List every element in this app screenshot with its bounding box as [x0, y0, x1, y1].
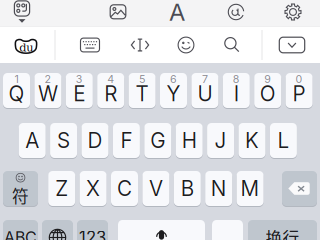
- button[interactable]: Baidu input: [8, 31, 44, 59]
- button[interactable]: 9: [254, 73, 281, 108]
- staticText: S: [57, 128, 70, 153]
- staticText: 8: [233, 72, 240, 85]
- staticText: A: [169, 0, 185, 26]
- staticText: 2: [44, 72, 51, 85]
- button[interactable]: Switch language: [42, 220, 73, 240]
- button[interactable]: C: [111, 171, 138, 206]
- staticText: W: [38, 81, 58, 106]
- staticText: U: [197, 81, 212, 106]
- button[interactable]: 0: [286, 73, 313, 108]
- staticText: 5: [139, 72, 145, 85]
- staticText: H: [182, 128, 197, 153]
- staticText: F: [120, 128, 132, 153]
- button[interactable]: Keyboard layout: [72, 31, 108, 59]
- button[interactable]: D: [81, 123, 108, 158]
- staticText: B: [181, 176, 194, 201]
- button[interactable]: 6: [160, 73, 187, 108]
- button[interactable]: L: [270, 123, 297, 158]
- staticText: Q: [8, 81, 24, 106]
- button[interactable]: 5: [129, 73, 156, 108]
- staticText: C: [117, 176, 132, 201]
- button[interactable]: 1: [3, 73, 30, 108]
- staticText: 7: [202, 72, 208, 85]
- staticText: X: [86, 176, 100, 201]
- button[interactable]: Mention: [216, 0, 256, 24]
- staticText: E: [73, 81, 85, 106]
- button[interactable]: 8: [223, 73, 250, 108]
- staticText: A: [25, 128, 39, 153]
- staticText: 0: [296, 72, 303, 85]
- staticText: Z: [55, 176, 68, 201]
- staticText: G: [150, 128, 165, 153]
- staticText: 123: [79, 227, 106, 240]
- button[interactable]: J: [207, 123, 234, 158]
- staticText: 4: [107, 72, 114, 85]
- button[interactable]: Symbols: [3, 171, 38, 206]
- staticText: J: [215, 128, 227, 153]
- button[interactable]: Delete: [282, 171, 317, 206]
- button[interactable]: F: [113, 123, 140, 158]
- staticText: 换行: [265, 225, 299, 240]
- staticText: N: [211, 176, 227, 201]
- staticText: O: [260, 81, 276, 106]
- staticText: L: [277, 128, 289, 153]
- staticText: K: [245, 128, 259, 153]
- staticText: D: [87, 128, 102, 153]
- staticText: 3: [76, 72, 83, 85]
- staticText: du: [19, 41, 33, 54]
- button[interactable]: N: [205, 171, 232, 206]
- button[interactable]: 7: [191, 73, 218, 108]
- button[interactable]: Return: [248, 220, 317, 240]
- button[interactable]: 3: [66, 73, 93, 108]
- button[interactable]: Settings: [273, 0, 313, 24]
- button[interactable]: G: [144, 123, 171, 158]
- button[interactable]: 2: [34, 73, 61, 108]
- staticText: Y: [166, 81, 180, 106]
- button[interactable]: A: [19, 123, 46, 158]
- button[interactable]: Z: [48, 171, 75, 206]
- staticText: M: [241, 176, 260, 201]
- button[interactable]: B: [174, 171, 201, 206]
- staticText: I: [234, 81, 239, 106]
- staticText: 符: [12, 183, 29, 207]
- button[interactable]: Search: [214, 31, 250, 59]
- button[interactable]: V: [142, 171, 169, 206]
- button[interactable]: Emoji: [168, 31, 204, 59]
- staticText: R: [104, 81, 117, 106]
- button[interactable]: K: [238, 123, 265, 158]
- staticText: 9: [264, 72, 271, 85]
- staticText: ，。: [213, 228, 243, 240]
- button[interactable]: S: [50, 123, 77, 158]
- button[interactable]: Text style: [157, 0, 197, 24]
- button[interactable]: X: [80, 171, 107, 206]
- staticText: P: [293, 81, 306, 106]
- button[interactable]: Photos: [98, 0, 138, 24]
- staticText: 1: [14, 72, 18, 85]
- button[interactable]: H: [176, 123, 203, 158]
- button[interactable]: Punctuation: [212, 220, 243, 240]
- staticText: 6: [170, 72, 177, 85]
- button[interactable]: 4: [97, 73, 124, 108]
- button[interactable]: Clipboard: [0, 0, 44, 24]
- staticText: V: [149, 176, 163, 201]
- button[interactable]: M: [237, 171, 264, 206]
- button[interactable]: Letters: [3, 220, 38, 240]
- staticText: ABC: [4, 228, 37, 240]
- button[interactable]: Hide keyboard: [272, 31, 312, 59]
- staticText: T: [136, 81, 149, 106]
- button[interactable]: Move cursor: [122, 31, 158, 59]
- button[interactable]: Numbers: [77, 220, 108, 240]
- button[interactable]: Space: [118, 220, 205, 240]
